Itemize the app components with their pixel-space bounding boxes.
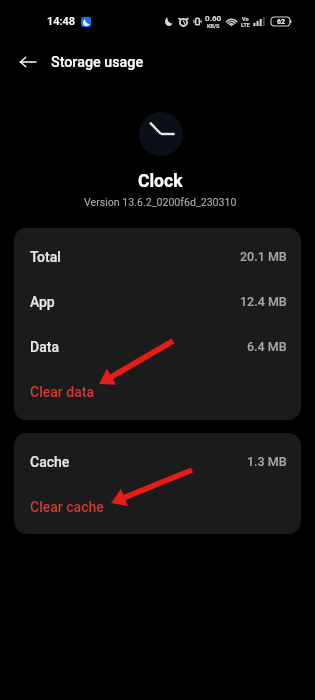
staticText: 0.60 [205,14,222,23]
staticText: Total [30,249,61,265]
staticText: 1.3 MB [247,454,287,469]
staticText: Version 13.6.2_0200f6d_230310 [84,196,237,208]
staticText: Clock [138,171,183,192]
staticText: 62 [277,18,285,26]
staticText: KB/S [207,23,220,29]
button[interactable]: Back [8,42,48,82]
staticText: 12.4 MB [240,294,287,309]
staticText: Data [30,339,59,355]
staticText: Clear cache [30,499,104,515]
staticText: 6.4 MB [247,339,287,354]
staticText: Clear data [30,384,94,400]
staticText: Storage usage [51,54,144,71]
staticText: Cache [30,454,70,470]
staticText: Vo [242,16,249,22]
button[interactable]: Clear data [14,369,301,414]
staticText: App [30,294,55,310]
staticText: LTE [241,22,250,28]
button[interactable]: Clear cache [14,484,301,529]
staticText: 14:48 [47,15,75,28]
staticText: 20.1 MB [240,249,287,264]
